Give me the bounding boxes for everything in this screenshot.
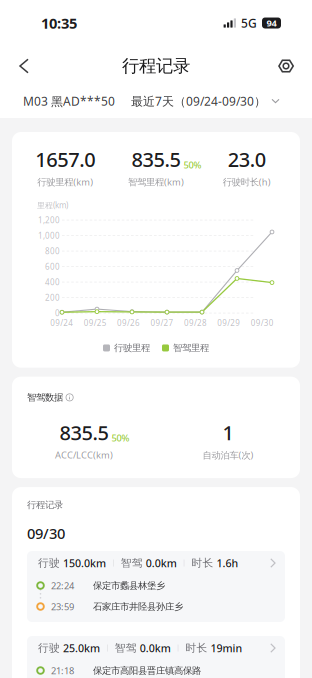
staticText: 智驾	[115, 641, 140, 655]
button[interactable]: 行驶	[27, 636, 285, 678]
staticText: 09/29	[217, 318, 240, 328]
staticText: 行驶里程	[114, 342, 150, 354]
staticText: 21:18	[51, 664, 74, 677]
button[interactable]: M03 黑AD***50	[23, 88, 115, 114]
staticText: 22:24	[51, 579, 74, 592]
staticText: 09/26	[117, 318, 140, 328]
staticText: 09/24	[50, 318, 73, 328]
button[interactable]: 返回	[8, 50, 40, 82]
staticText: 自动泊车(次)	[202, 449, 253, 461]
staticText: 行驶里程(km)	[37, 176, 93, 188]
staticText: 835.5	[59, 419, 108, 446]
staticText: ACC/LCC(km)	[55, 449, 113, 461]
staticText: 0.0km	[146, 556, 177, 570]
staticText: 智驾里程(km)	[128, 176, 184, 188]
staticText: 1,000	[38, 230, 60, 241]
staticText: 行驶	[38, 641, 63, 655]
staticText: 150.0km	[63, 556, 106, 570]
staticText: 400	[45, 277, 60, 287]
staticText: 时长	[185, 641, 210, 655]
staticText: 智驾里程	[173, 342, 209, 354]
staticText: 石家庄市井陉县孙庄乡	[93, 601, 183, 612]
staticText: 智驾数据	[27, 392, 63, 403]
staticText: 94	[266, 17, 276, 29]
staticText: 最近7天（09/24-09/30）	[131, 93, 266, 109]
staticText: 保定市蠡县林堡乡	[93, 580, 165, 591]
staticText: 200	[45, 292, 60, 303]
staticText: 里程(km)	[37, 200, 68, 211]
staticText: 1657.0	[35, 146, 95, 173]
staticText: 行程记录	[122, 55, 190, 77]
staticText: 智驾	[121, 556, 146, 570]
staticText: 5G	[241, 15, 257, 31]
staticText: 行驶	[38, 556, 63, 570]
staticText: 保定市高阳县晋庄镇高保路	[93, 665, 201, 676]
staticText: M03 黑AD***50	[23, 93, 115, 109]
staticText: 0.0km	[140, 641, 171, 655]
staticText: 835.5	[131, 146, 180, 173]
staticText: 09/27	[150, 318, 173, 328]
staticText: 600	[45, 261, 60, 272]
staticText: 行程记录	[27, 499, 63, 511]
staticText: 1,200	[38, 215, 60, 225]
staticText: 1	[222, 419, 233, 446]
staticText: 行驶时长(h)	[223, 176, 271, 188]
button[interactable]: 最近7天（09/24-09/30）	[131, 88, 279, 114]
staticText: 10:35	[41, 13, 77, 33]
staticText: 50%	[183, 159, 201, 171]
staticText: 23:59	[51, 600, 74, 613]
button[interactable]: 行驶	[27, 551, 285, 622]
staticText: 时长	[191, 556, 216, 570]
staticText: 23.0	[228, 146, 266, 173]
staticText: 09/28	[184, 318, 207, 328]
staticText: 09/25	[84, 318, 107, 328]
staticText: 19min	[210, 641, 242, 655]
staticText: 09/30	[251, 318, 274, 328]
staticText: 1.6h	[216, 556, 238, 570]
staticText: 50%	[111, 432, 129, 444]
staticText: 25.0km	[63, 641, 100, 655]
staticText: 0	[55, 308, 60, 318]
staticText: 09/30	[27, 523, 65, 543]
button[interactable]: 设置	[270, 50, 302, 82]
staticText: 800	[45, 246, 60, 256]
